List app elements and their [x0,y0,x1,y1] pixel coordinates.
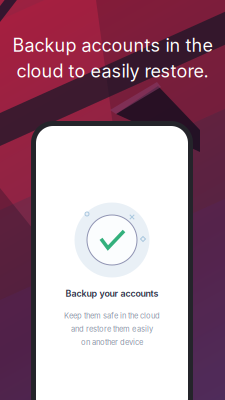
staticText: cloud to easily restore. [16,60,208,82]
staticText: and restore them easily [71,324,153,334]
staticText: Backup your accounts [65,288,158,299]
staticText: Backup accounts in the [12,34,212,56]
staticText: Keep them safe in the cloud [64,311,160,320]
staticText: on another device [81,338,143,347]
